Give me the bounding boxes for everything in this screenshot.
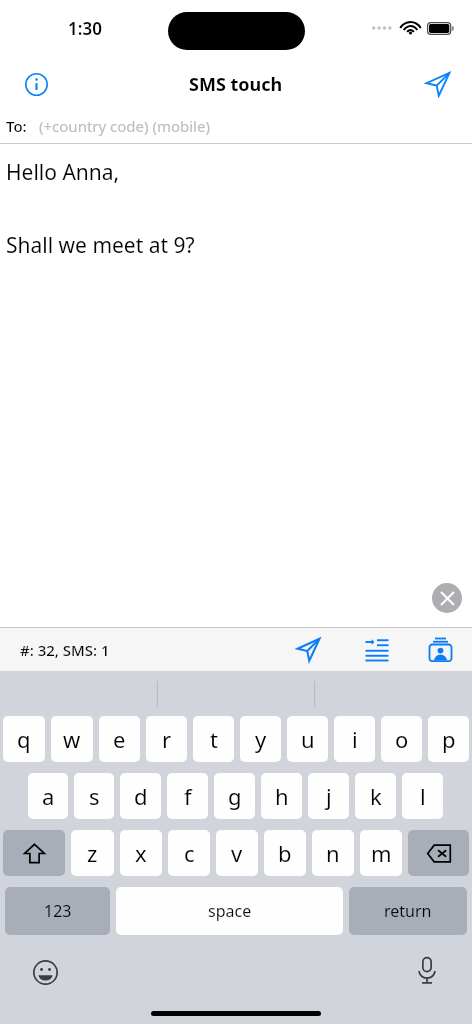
- button[interactable]: h: [261, 773, 302, 819]
- staticText: w: [63, 724, 81, 754]
- button[interactable]: space: [116, 887, 343, 935]
- staticText: Shall we meet at 9?: [6, 231, 195, 260]
- button[interactable]: v: [216, 830, 258, 876]
- staticText: q: [17, 724, 31, 754]
- staticText: a: [42, 781, 55, 811]
- button[interactable]: Shift: [3, 830, 65, 876]
- staticText: p: [442, 724, 456, 754]
- staticText: l: [420, 781, 426, 811]
- staticText: v: [231, 838, 243, 868]
- staticText: k: [370, 781, 382, 811]
- button[interactable]: j: [308, 773, 349, 819]
- button[interactable]: z: [71, 830, 114, 876]
- button[interactable]: q: [3, 716, 45, 762]
- staticText: g: [228, 781, 242, 811]
- button[interactable]: y: [240, 716, 281, 762]
- staticText: m: [371, 838, 392, 868]
- button[interactable]: Backspace: [408, 830, 469, 876]
- button[interactable]: u: [287, 716, 328, 762]
- button[interactable]: c: [168, 830, 210, 876]
- staticText: To:: [6, 116, 27, 136]
- staticText: space: [208, 900, 252, 922]
- button[interactable]: e: [99, 716, 140, 762]
- button[interactable]: s: [74, 773, 114, 819]
- button[interactable]: i: [334, 716, 375, 762]
- staticText: n: [326, 838, 340, 868]
- staticText: e: [113, 724, 126, 754]
- staticText: u: [301, 724, 315, 754]
- staticText: 1:30: [68, 17, 102, 40]
- button[interactable]: d: [120, 773, 161, 819]
- staticText: SMS touch: [189, 72, 283, 97]
- button[interactable]: 123: [5, 887, 110, 935]
- staticText: i: [352, 724, 358, 754]
- button[interactable]: b: [264, 830, 306, 876]
- button[interactable]: Contacts: [420, 628, 460, 671]
- button[interactable]: o: [381, 716, 422, 762]
- button[interactable]: Emoji: [28, 955, 62, 989]
- staticText: y: [255, 724, 267, 754]
- staticText: 123: [44, 900, 72, 922]
- button[interactable]: t: [193, 716, 234, 762]
- button[interactable]: x: [120, 830, 162, 876]
- staticText: Hello Anna,: [6, 158, 120, 187]
- button[interactable]: Info: [18, 66, 54, 102]
- button[interactable]: return: [349, 887, 467, 935]
- button[interactable]: Templates: [354, 628, 398, 671]
- staticText: t: [210, 724, 218, 754]
- button[interactable]: f: [167, 773, 208, 819]
- button[interactable]: Clear text: [432, 583, 462, 613]
- staticText: x: [135, 838, 147, 868]
- staticText: f: [184, 781, 192, 811]
- button[interactable]: a: [28, 773, 68, 819]
- staticText: d: [134, 781, 148, 811]
- button[interactable]: m: [360, 830, 402, 876]
- staticText: s: [89, 781, 100, 811]
- staticText: o: [395, 724, 409, 754]
- staticText: r: [162, 724, 172, 754]
- button[interactable]: k: [355, 773, 396, 819]
- button[interactable]: r: [146, 716, 187, 762]
- button[interactable]: g: [214, 773, 255, 819]
- staticText: h: [275, 781, 289, 811]
- button[interactable]: l: [402, 773, 443, 819]
- staticText: z: [87, 838, 98, 868]
- button[interactable]: w: [51, 716, 93, 762]
- button[interactable]: p: [428, 716, 469, 762]
- staticText: b: [278, 838, 292, 868]
- button[interactable]: Send: [418, 64, 458, 104]
- button[interactable]: n: [312, 830, 354, 876]
- button[interactable]: To:: [0, 108, 472, 143]
- button[interactable]: Dictation: [410, 953, 444, 987]
- staticText: j: [326, 781, 332, 811]
- staticText: return: [384, 900, 432, 922]
- staticText: c: [184, 838, 195, 868]
- staticText: (+country code) (mobile): [39, 116, 210, 136]
- staticText: #: 32, SMS: 1: [20, 640, 110, 660]
- button[interactable]: Send message: [286, 628, 330, 671]
